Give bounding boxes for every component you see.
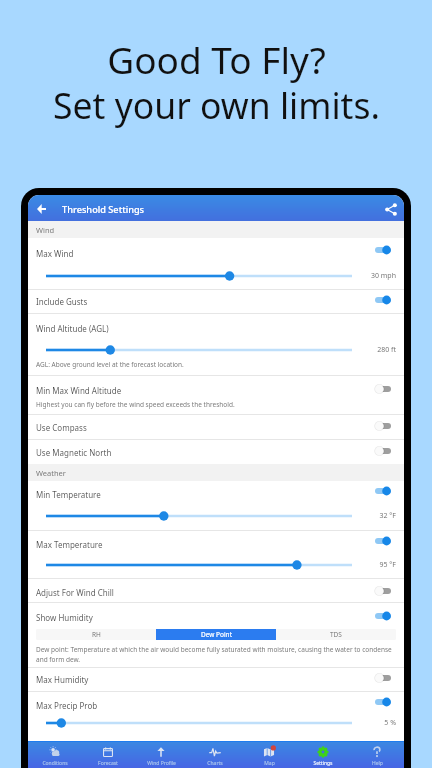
staticText: Max Wind: [36, 248, 74, 259]
staticText: 30 mph: [370, 271, 396, 281]
staticText: Adjust For Wind Chill: [36, 587, 114, 598]
button[interactable]: Back: [31, 199, 51, 219]
button[interactable]: Help: [350, 742, 404, 768]
button[interactable]: Max Humidity: [28, 668, 404, 691]
staticText: Include Gusts: [36, 296, 88, 307]
button[interactable]: Share: [381, 199, 401, 219]
button[interactable]: Forecast: [81, 742, 134, 768]
button[interactable]: Min Max Wind Altitude: [28, 376, 404, 414]
staticText: 95 °F: [379, 560, 396, 570]
staticText: Good To Fly?: [107, 34, 326, 84]
button[interactable]: RH: [36, 629, 156, 640]
button[interactable]: Charts: [188, 742, 242, 768]
button[interactable]: Wind Profile: [134, 742, 188, 768]
staticText: 32 °F: [379, 511, 396, 521]
button[interactable]: Use Compass: [28, 415, 404, 439]
button[interactable]: Map: [242, 742, 296, 768]
staticText: 5 %: [384, 718, 396, 728]
button[interactable]: Use Magnetic North: [28, 440, 404, 464]
staticText: RH: [92, 630, 101, 639]
button[interactable]: Adjust For Wind Chill: [28, 579, 404, 602]
button[interactable]: Max Temperature: [28, 531, 404, 578]
staticText: Min Max Wind Altitude: [36, 385, 122, 396]
staticText: Map: [264, 760, 275, 767]
staticText: Min Temperature: [36, 489, 101, 500]
staticText: Weather: [36, 468, 66, 478]
staticText: Charts: [207, 760, 223, 767]
button[interactable]: Settings: [296, 742, 350, 768]
button[interactable]: Show Humidity: [28, 603, 404, 625]
staticText: 280 ft: [377, 345, 396, 355]
button[interactable]: Include Gusts: [28, 290, 404, 313]
staticText: Threshold Settings: [62, 203, 145, 216]
staticText: Dew Point: [201, 630, 232, 639]
staticText: Settings: [313, 760, 333, 767]
staticText: Forecast: [98, 760, 118, 767]
staticText: Max Precip Prob: [36, 700, 98, 711]
staticText: Highest you can fly before the wind spee…: [36, 400, 235, 409]
staticText: Help: [372, 760, 383, 767]
button[interactable]: Min Temperature: [28, 481, 404, 530]
button[interactable]: Dew Point: [156, 629, 276, 640]
staticText: Conditions: [42, 760, 68, 767]
staticText: AGL: Above ground level at the forecast …: [36, 360, 184, 369]
staticText: Max Temperature: [36, 539, 103, 550]
staticText: Max Humidity: [36, 674, 89, 685]
button[interactable]: Max Wind: [28, 238, 404, 289]
staticText: TDS: [330, 630, 342, 639]
staticText: Set your own limits.: [53, 81, 380, 129]
staticText: Use Magnetic North: [36, 447, 112, 458]
staticText: Wind Profile: [147, 760, 176, 767]
staticText: Use Compass: [36, 422, 87, 433]
button[interactable]: TDS: [276, 629, 396, 640]
staticText: Wind Altitude (AGL): [36, 323, 109, 334]
button[interactable]: Wind Altitude (AGL): [28, 314, 404, 375]
staticText: Wind: [36, 225, 55, 235]
staticText: Dew point: Temperature at which the air …: [36, 645, 396, 664]
button[interactable]: Max Precip Prob: [28, 692, 404, 739]
button[interactable]: Conditions: [28, 742, 81, 768]
staticText: Show Humidity: [36, 612, 93, 623]
